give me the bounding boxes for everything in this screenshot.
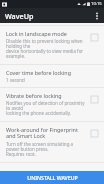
staticText: 10:15 xyxy=(91,1,102,7)
button[interactable]: Cover time before locking xyxy=(0,65,104,87)
button[interactable]: Unchecked, Vibrate before locking xyxy=(88,93,100,105)
button[interactable]: Unchecked, Lock in landscape mode xyxy=(88,31,100,43)
button[interactable]: UNINSTALL WAVEUP xyxy=(0,171,104,184)
staticText: 1 second xyxy=(6,77,25,83)
button[interactable]: Lock in landscape mode xyxy=(0,26,104,64)
staticText: Work-around for Fingerprint and Smart Lo… xyxy=(6,126,85,140)
staticText: Lock in landscape mode xyxy=(6,30,67,37)
button[interactable]: Unchecked, Work-around for Fingerprint a… xyxy=(88,127,100,139)
staticText: WaveUp xyxy=(5,11,34,21)
staticText: Turn off the screen simulating a power b… xyxy=(6,141,85,158)
button[interactable]: Work-around for Fingerprint and Smart Lo… xyxy=(0,122,104,162)
staticText: Notifies you of detection of proximity t… xyxy=(6,100,85,117)
staticText: UNINSTALL WAVEUP xyxy=(27,174,78,181)
staticText: Vibrate before locking xyxy=(6,92,62,99)
button[interactable]: Vibrate before locking xyxy=(0,88,104,121)
button[interactable]: More options xyxy=(90,8,104,23)
staticText: Disable this to prevent locking when hol… xyxy=(6,38,85,60)
staticText: Cover time before locking xyxy=(6,69,71,76)
